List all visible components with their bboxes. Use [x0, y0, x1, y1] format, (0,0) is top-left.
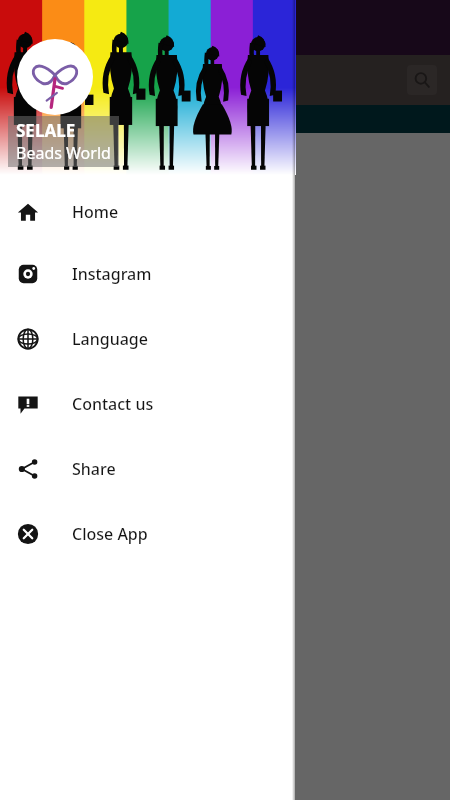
button[interactable]: Home	[0, 183, 295, 241]
staticText: Brown Burlap Ribbon 10	[17, 189, 234, 215]
button[interactable]: Instagram	[0, 241, 295, 306]
staticText: Home	[72, 201, 119, 223]
button[interactable]: Share	[0, 436, 295, 501]
button[interactable]: Brown Burlap Ribbon 10	[3, 156, 447, 800]
button[interactable]: Close App	[0, 501, 295, 566]
button[interactable]: Contact us	[0, 371, 295, 436]
staticText: Instagram	[72, 263, 152, 285]
button[interactable]: Search	[407, 65, 437, 95]
staticText: SELALE	[16, 119, 76, 142]
button[interactable]: Language	[0, 306, 295, 371]
staticText: Contact us	[72, 393, 154, 415]
staticText: Language	[72, 328, 148, 350]
staticText: Close App	[72, 523, 148, 545]
staticText: Share	[72, 458, 116, 480]
staticText: Beads World	[16, 142, 111, 164]
